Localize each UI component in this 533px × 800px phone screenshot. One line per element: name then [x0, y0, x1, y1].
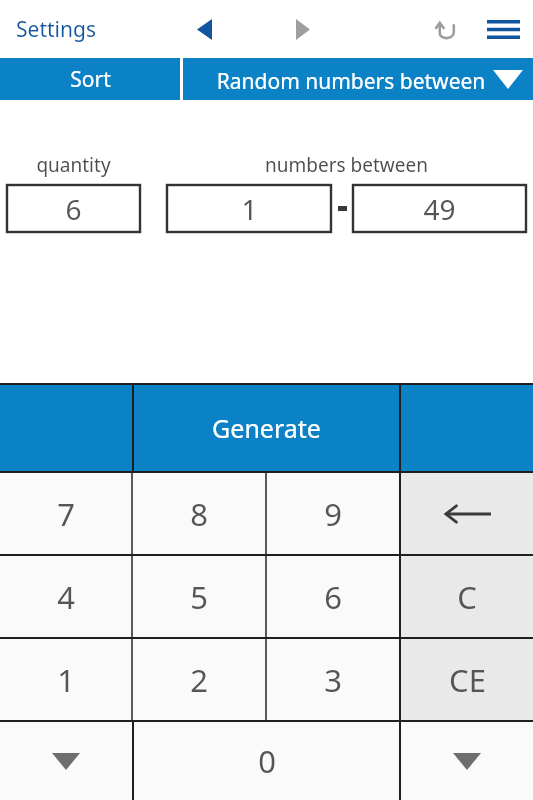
staticText: 9: [324, 493, 342, 535]
button[interactable]: Decrease: [0, 722, 132, 800]
button[interactable]: C: [401, 556, 533, 637]
staticText: 2: [190, 659, 208, 701]
staticText: 7: [57, 493, 75, 535]
button[interactable]: Increase: [401, 722, 533, 800]
staticText: 6: [324, 576, 342, 618]
button[interactable]: Menu: [477, 0, 529, 58]
staticText: 5: [190, 576, 208, 618]
staticText: 3: [324, 659, 342, 701]
staticText: 1: [57, 659, 75, 701]
staticText: 49: [423, 190, 456, 228]
button[interactable]: 49: [353, 185, 526, 232]
button[interactable]: 6: [7, 185, 140, 232]
staticText: quantity: [7, 152, 140, 178]
button[interactable]: Settings: [6, 0, 106, 58]
button[interactable]: 1: [167, 185, 331, 232]
staticText: Generate: [212, 411, 321, 445]
button[interactable]: Previous: [178, 0, 230, 58]
button[interactable]: 1: [0, 639, 131, 720]
staticText: 4: [57, 576, 75, 618]
staticText: numbers between: [167, 152, 526, 178]
button[interactable]: Sort: [0, 58, 180, 100]
button[interactable]: 5: [133, 556, 265, 637]
button[interactable]: Backspace: [401, 473, 533, 554]
staticText: 1: [241, 190, 258, 228]
staticText: 6: [65, 190, 82, 228]
staticText: 8: [190, 493, 208, 535]
button[interactable]: 4: [0, 556, 131, 637]
button[interactable]: 8: [133, 473, 265, 554]
button[interactable]: Random numbers between: [183, 58, 533, 100]
button[interactable]: 3: [267, 639, 399, 720]
button[interactable]: Next: [277, 0, 329, 58]
button[interactable]: Generate: [134, 385, 399, 471]
staticText: C: [457, 576, 477, 618]
button[interactable]: 2: [133, 639, 265, 720]
staticText: Sort: [70, 65, 111, 94]
button[interactable]: 7: [0, 473, 131, 554]
button[interactable]: 6: [267, 556, 399, 637]
staticText: Settings: [16, 15, 96, 44]
button[interactable]: 9: [267, 473, 399, 554]
button[interactable]: CE: [401, 639, 533, 720]
staticText: Random numbers between: [183, 67, 519, 96]
button[interactable]: Undo: [420, 0, 472, 58]
staticText: CE: [449, 659, 486, 701]
staticText: 0: [258, 740, 276, 782]
button[interactable]: 0: [134, 722, 399, 800]
